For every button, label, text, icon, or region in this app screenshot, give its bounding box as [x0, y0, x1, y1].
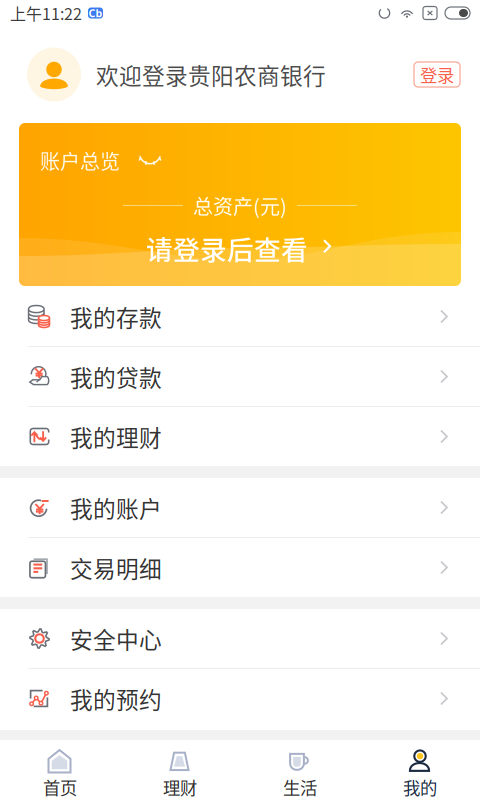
button[interactable]: 我的存款: [0, 287, 480, 347]
staticText: 首页: [43, 774, 77, 800]
staticText: 我的理财: [70, 420, 162, 453]
staticText: 交易明细: [70, 551, 162, 584]
button[interactable]: 安全中心: [0, 609, 480, 669]
button[interactable]: 我的: [360, 740, 480, 800]
staticText: 我的预约: [70, 682, 162, 715]
button[interactable]: 登录: [414, 62, 460, 87]
button[interactable]: 我的预约: [0, 669, 480, 728]
staticText: 我的存款: [70, 300, 162, 333]
button[interactable]: 我的账户: [0, 478, 480, 538]
button[interactable]: 我的贷款: [0, 347, 480, 407]
staticText: 欢迎登录贵阳农商银行: [96, 58, 326, 91]
staticText: 总资产(元): [193, 191, 287, 220]
button[interactable]: 交易明细: [0, 538, 480, 597]
staticText: 安全中心: [70, 622, 162, 655]
staticText: 登录: [420, 62, 454, 87]
staticText: 我的账户: [70, 491, 162, 524]
staticText: 我的贷款: [70, 360, 162, 393]
staticText: Cb: [88, 6, 102, 20]
staticText: 理财: [163, 774, 197, 800]
staticText: 生活: [283, 774, 317, 800]
staticText: 账户总览: [40, 146, 120, 175]
button[interactable]: 生活: [240, 740, 360, 800]
staticText: 请登录后查看: [146, 229, 308, 267]
button[interactable]: 理财: [120, 740, 240, 800]
button[interactable]: 首页: [0, 740, 120, 800]
staticText: 我的: [403, 774, 437, 800]
staticText: 上午11:22: [10, 1, 82, 25]
button[interactable]: 我的理财: [0, 407, 480, 466]
button[interactable]: 请登录后查看: [146, 229, 334, 267]
